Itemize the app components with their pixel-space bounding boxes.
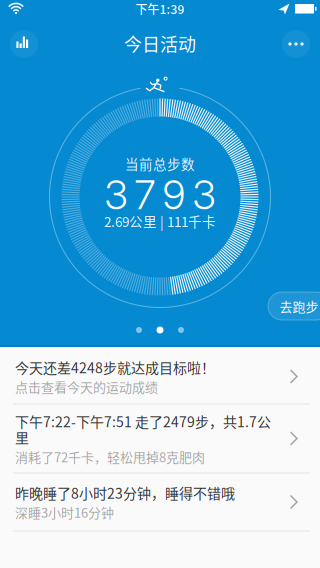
button[interactable]: 昨晚睡了8小时23分钟，睡得不错哦 [0, 473, 320, 531]
button[interactable]: 今天还差4248步就达成目标啦！ [0, 348, 320, 405]
button[interactable]: 下午7:22-下午7:51 走了2479步，共1.7公 里 [0, 404, 320, 473]
staticText: 今天还差4248步就达成目标啦！ [15, 359, 215, 375]
staticText: 今日活动 [124, 33, 196, 54]
staticText: 消耗了72千卡，轻松甩掉8克肥肉 [15, 449, 205, 464]
staticText: 点击查看今天的运动成绩 [15, 379, 158, 394]
staticText: 下午7:22-下午7:51 走了2479步，共1.7公 里 [15, 413, 271, 445]
button[interactable]: 统计 [10, 30, 38, 58]
staticText: 下午1:39 [135, 2, 184, 16]
staticText: 当前总步数 [125, 156, 195, 171]
staticText: 深睡3小时16分钟 [15, 505, 114, 519]
staticText: 去跑步 [279, 299, 318, 313]
staticText: 2.69公里 | 111千卡 [104, 213, 216, 229]
button[interactable]: 去跑步 [268, 292, 320, 320]
button[interactable]: 更多 [282, 30, 310, 58]
staticText: 3 7 9 3 [104, 173, 215, 217]
staticText: 昨晚睡了8小时23分钟，睡得不错哦 [15, 485, 235, 501]
